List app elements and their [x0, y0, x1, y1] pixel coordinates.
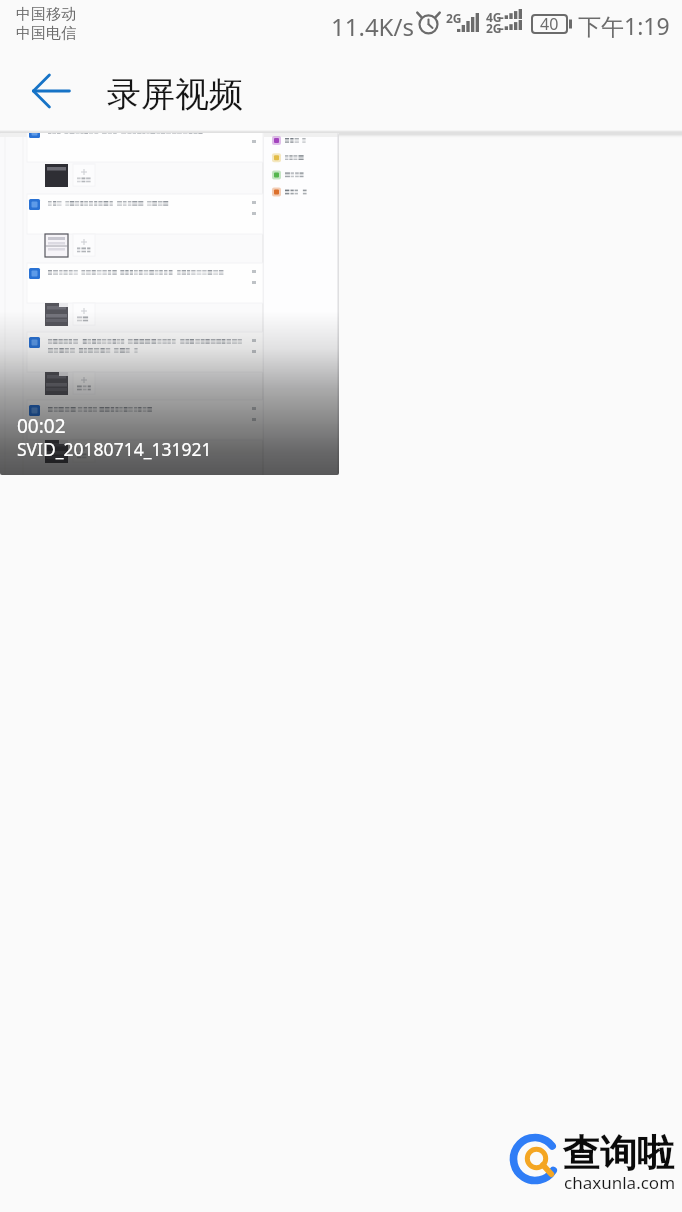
staticText: 11.4K/s [331, 10, 414, 43]
staticText: SVID_20180714_131921 [17, 437, 212, 461]
staticText: 00:02 [17, 413, 66, 439]
staticText: 录屏视频 [107, 73, 243, 116]
staticText: chaxunla.com [564, 1171, 676, 1194]
staticText: 2G [486, 20, 502, 36]
staticText: 查询啦 [563, 1130, 674, 1177]
button[interactable]: 00:02 [0, 133, 339, 475]
staticText: 40 [540, 13, 559, 35]
button[interactable]: Back [25, 65, 77, 117]
staticText: 4G [486, 9, 502, 25]
staticText: 中国电信 [16, 24, 76, 43]
staticText: 中国移动 [16, 5, 76, 24]
staticText: 下午1:19 [578, 10, 670, 41]
staticText: 2G [446, 10, 462, 26]
